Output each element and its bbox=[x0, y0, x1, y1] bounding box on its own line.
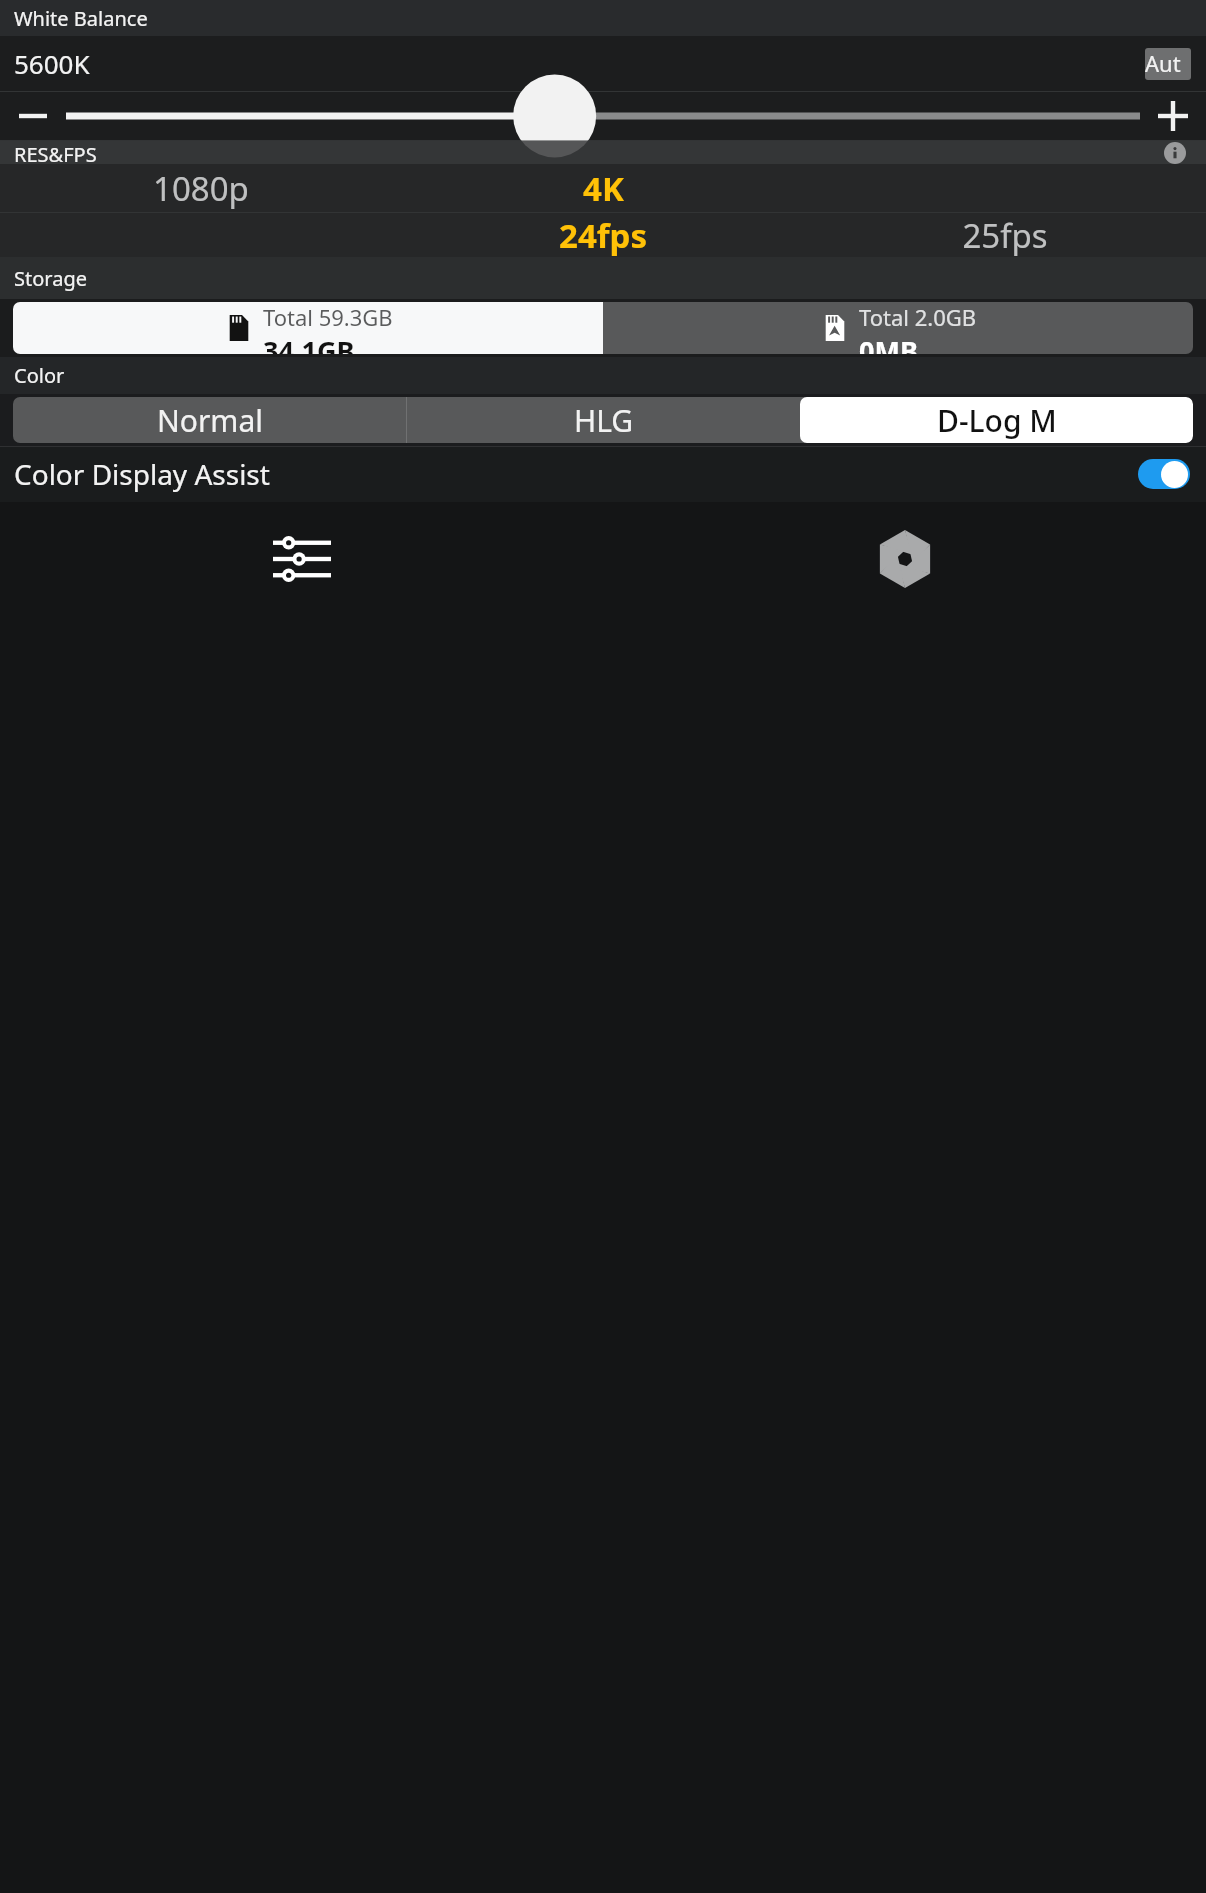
button[interactable]: D-Log M bbox=[800, 397, 1193, 443]
button[interactable]: HLG bbox=[407, 397, 800, 443]
staticText: RES&FPS bbox=[14, 141, 97, 164]
staticText: HLG bbox=[574, 400, 634, 441]
staticText: Color bbox=[14, 362, 65, 389]
staticText: Total 59.3GB bbox=[263, 302, 393, 332]
button[interactable]: Settings bbox=[0, 524, 603, 594]
staticText: 34.1GB bbox=[263, 332, 355, 354]
button[interactable]: Info bbox=[1164, 142, 1186, 164]
staticText: Total 2.0GB bbox=[859, 302, 977, 332]
staticText: 0MB bbox=[859, 332, 918, 354]
button[interactable]: Total 2.0GB bbox=[603, 302, 1193, 354]
button[interactable]: Total 59.3GB bbox=[13, 302, 603, 354]
staticText: Color Display Assist bbox=[14, 455, 270, 493]
button[interactable]: Increase bbox=[1140, 92, 1206, 140]
button[interactable]: 25fps bbox=[804, 213, 1206, 257]
staticText: D-Log M bbox=[937, 400, 1057, 441]
staticText: Storage bbox=[14, 265, 87, 292]
button[interactable]: Auto bbox=[1145, 48, 1191, 80]
staticText: 4K bbox=[583, 166, 624, 211]
staticText: 24fps bbox=[559, 213, 647, 257]
staticText: Normal bbox=[157, 400, 263, 441]
button[interactable]: Normal bbox=[13, 397, 406, 443]
staticText: 25fps bbox=[962, 213, 1048, 257]
staticText: Auto bbox=[1145, 48, 1191, 80]
button[interactable]: Color Display Assist bbox=[14, 446, 1190, 502]
staticText: White Balance bbox=[14, 5, 148, 32]
button[interactable]: Decrease bbox=[0, 92, 66, 140]
button[interactable]: 1080p bbox=[0, 164, 402, 212]
staticText: 1080p bbox=[153, 166, 249, 211]
staticText: 5600K bbox=[14, 46, 90, 81]
button[interactable]: 24fps bbox=[402, 213, 804, 257]
button[interactable]: 4K bbox=[402, 164, 804, 212]
button[interactable]: Shutter bbox=[603, 524, 1206, 594]
